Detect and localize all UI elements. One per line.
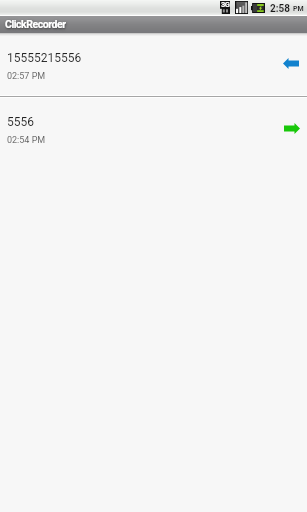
staticText: ClickRecorder [5,18,66,30]
staticText: 02:57 PM [7,71,46,82]
other: 3G mobile data [220,1,230,14]
other: Battery charging [251,3,265,13]
staticText: 15555215556 [7,51,82,65]
staticText: 2:58 [270,3,291,15]
button[interactable]: 5556 [0,98,307,157]
other: Incoming call [283,58,299,69]
staticText: 3G [221,0,230,9]
staticText: 02:54 PM [7,135,46,146]
staticText: 5556 [7,115,34,129]
other: Outgoing call [284,123,300,134]
other: Mobile signal strength [235,1,248,14]
staticText: PM [293,5,304,13]
button[interactable]: 15555215556 [0,36,307,95]
